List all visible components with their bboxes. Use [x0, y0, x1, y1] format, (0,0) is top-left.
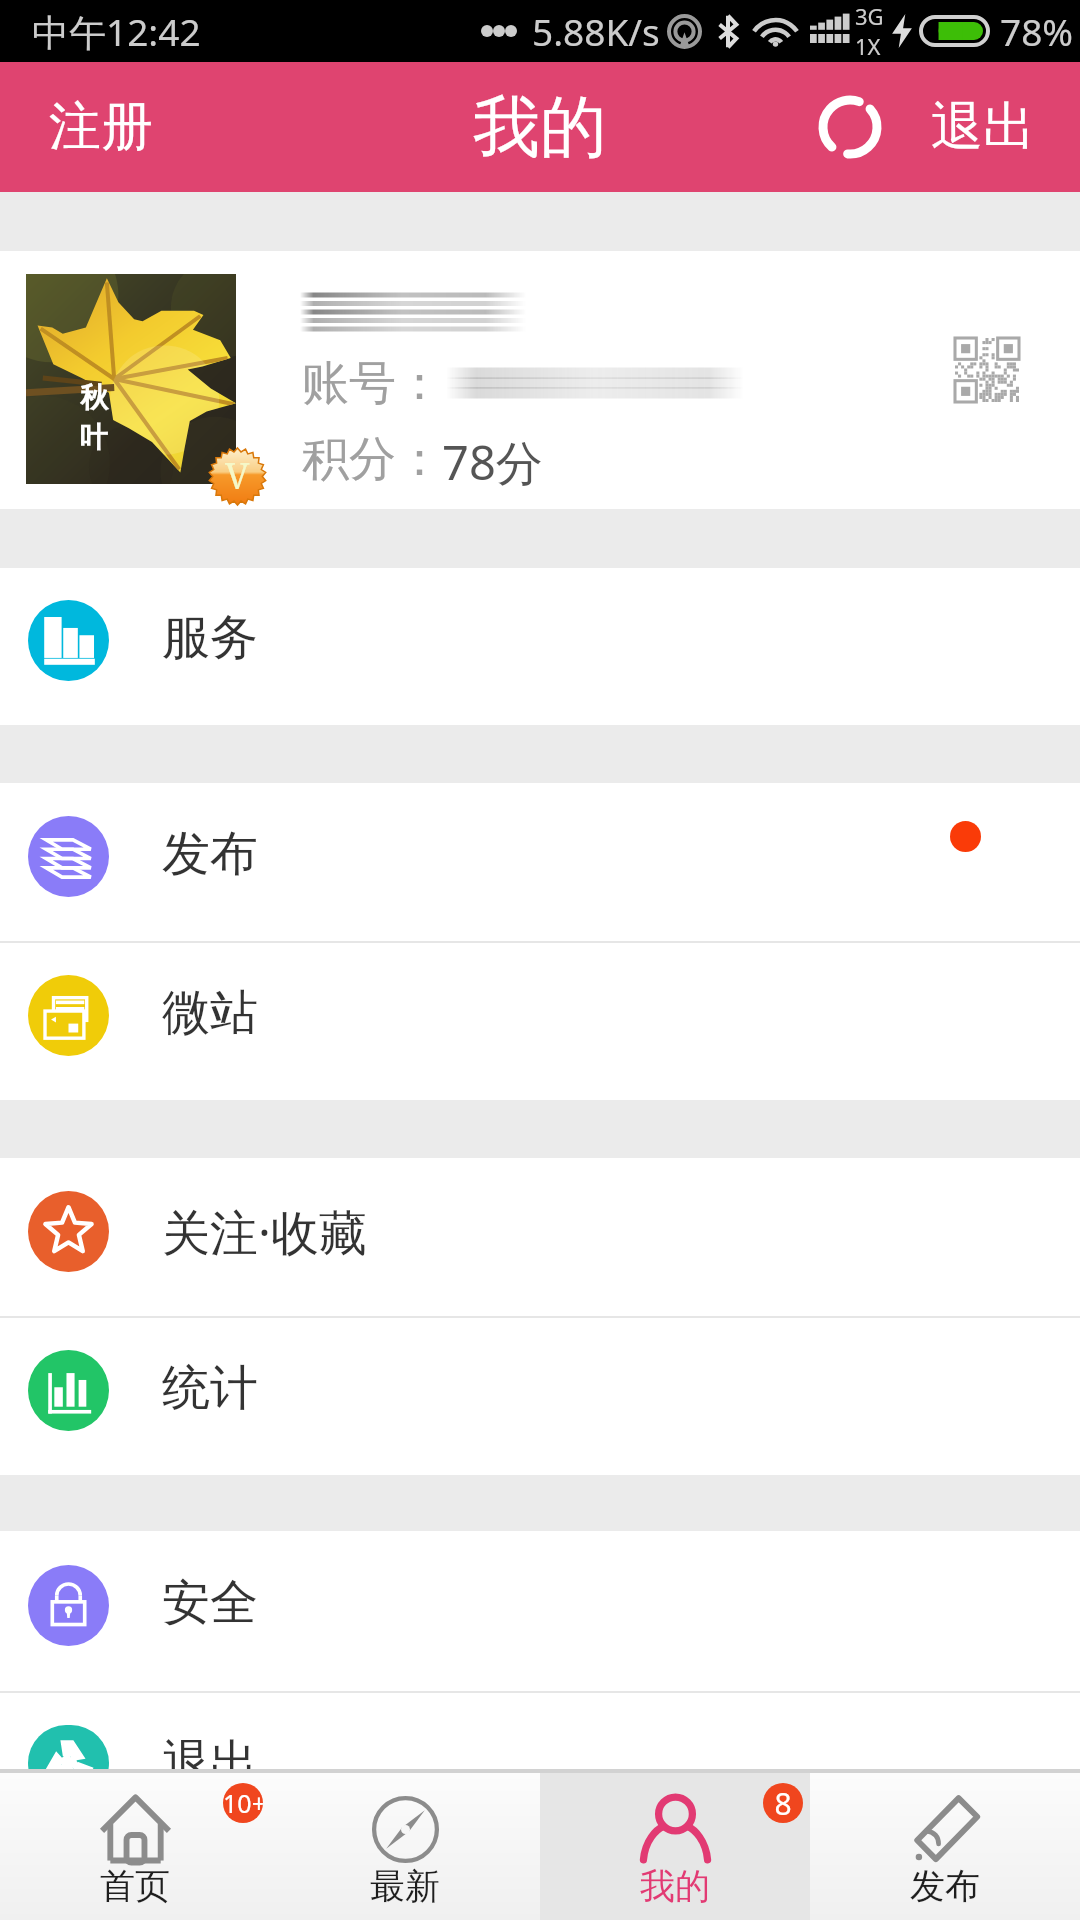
staticText: 首页 — [100, 1864, 170, 1908]
button[interactable]: 安全 — [0, 1531, 1080, 1691]
staticText: 10+ — [223, 1786, 263, 1820]
button[interactable]: 最新 — [270, 1773, 540, 1920]
button[interactable]: 注册 — [0, 62, 193, 192]
staticText: 注册 — [49, 94, 153, 160]
button[interactable]: Avatar — [26, 274, 236, 484]
button[interactable]: 退出 — [0, 1693, 1080, 1769]
staticText: 关注·收藏 — [162, 1199, 367, 1265]
staticText: 8 — [774, 1783, 792, 1823]
button[interactable]: 微站 — [0, 943, 1080, 1100]
staticText: 最新 — [370, 1864, 440, 1908]
staticText: 5.88K/s — [532, 6, 660, 56]
staticText: 发布 — [910, 1864, 980, 1908]
staticText: 统计 — [162, 1358, 258, 1418]
staticText: 我的 — [473, 85, 607, 169]
staticText: 3G — [855, 1, 884, 31]
staticText: 微站 — [162, 983, 258, 1043]
button[interactable]: QR code — [955, 338, 1019, 402]
staticText: 账号： — [302, 354, 443, 413]
other: Refresh — [817, 94, 883, 160]
staticText: 中午12:42 — [32, 6, 201, 57]
button[interactable]: 统计 — [0, 1318, 1080, 1475]
button[interactable]: 关注·收藏 — [0, 1158, 1080, 1316]
staticText: 退出 — [931, 94, 1035, 160]
button[interactable]: 发布 — [810, 1773, 1080, 1920]
staticText: 秋 叶 — [80, 380, 108, 455]
staticText: 退出 — [162, 1733, 258, 1769]
staticText: 积分： — [302, 430, 443, 489]
staticText: 安全 — [162, 1573, 258, 1633]
staticText: 服务 — [162, 608, 258, 668]
staticText: 78分 — [442, 430, 543, 494]
button[interactable]: Refresh — [797, 62, 1080, 192]
button[interactable]: 我的 — [540, 1773, 810, 1920]
button[interactable]: 首页 — [0, 1773, 270, 1920]
staticText: 78% — [1000, 6, 1074, 56]
staticText: 我的 — [640, 1864, 710, 1908]
button[interactable]: 服务 — [0, 568, 1080, 725]
staticText: 1X — [855, 31, 881, 61]
staticText: 发布 — [162, 824, 258, 884]
button[interactable]: 发布 — [0, 783, 1080, 941]
staticText: V — [225, 451, 250, 500]
